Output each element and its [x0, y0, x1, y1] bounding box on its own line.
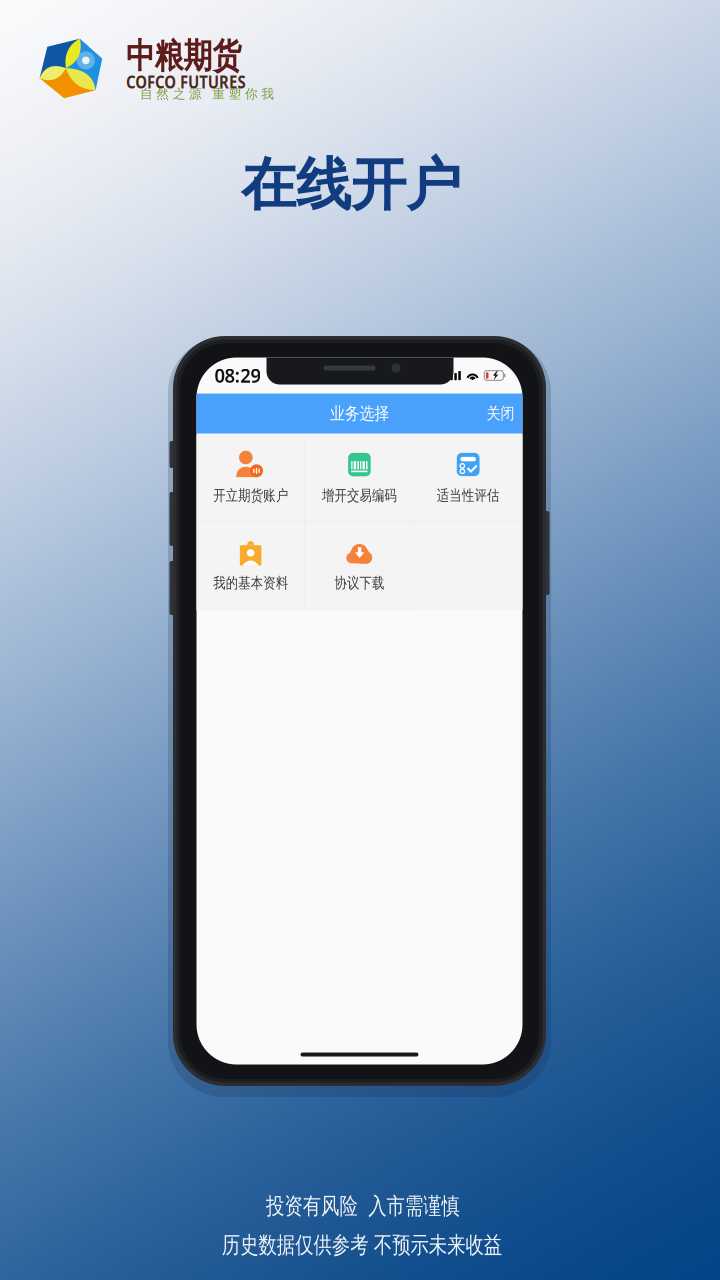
- staticText: 业务选择: [317, 400, 401, 427]
- button[interactable]: 开立期货账户: [196, 434, 305, 522]
- staticText: COFCO FUTURES: [126, 70, 307, 100]
- staticText: 历史数据仅供参考 不预示未来收益: [148, 1228, 576, 1262]
- button[interactable]: 我的基本资料: [196, 522, 305, 609]
- button[interactable]: 增开交易编码: [305, 434, 414, 522]
- button[interactable]: 协议下载: [305, 522, 414, 609]
- staticText: 08:29: [212, 362, 262, 389]
- button[interactable]: 关闭: [478, 393, 522, 433]
- staticText: 开立期货账户: [194, 484, 308, 507]
- staticText: 在线开户: [197, 137, 505, 232]
- staticText: 投资有风险 入市需谨慎: [215, 1189, 511, 1223]
- staticText: 关闭: [480, 401, 520, 426]
- button[interactable]: 适当性评估: [414, 434, 522, 522]
- staticText: 我的基本资料: [194, 571, 308, 594]
- staticText: 增开交易编码: [302, 484, 416, 507]
- staticText: 中粮期货: [126, 35, 270, 79]
- staticText: 协议下载: [321, 571, 397, 594]
- button[interactable]: 业务选择: [196, 393, 522, 433]
- staticText: 适当性评估: [421, 484, 516, 507]
- staticText: 自 然 之 源 重 塑 你 我: [140, 86, 296, 104]
